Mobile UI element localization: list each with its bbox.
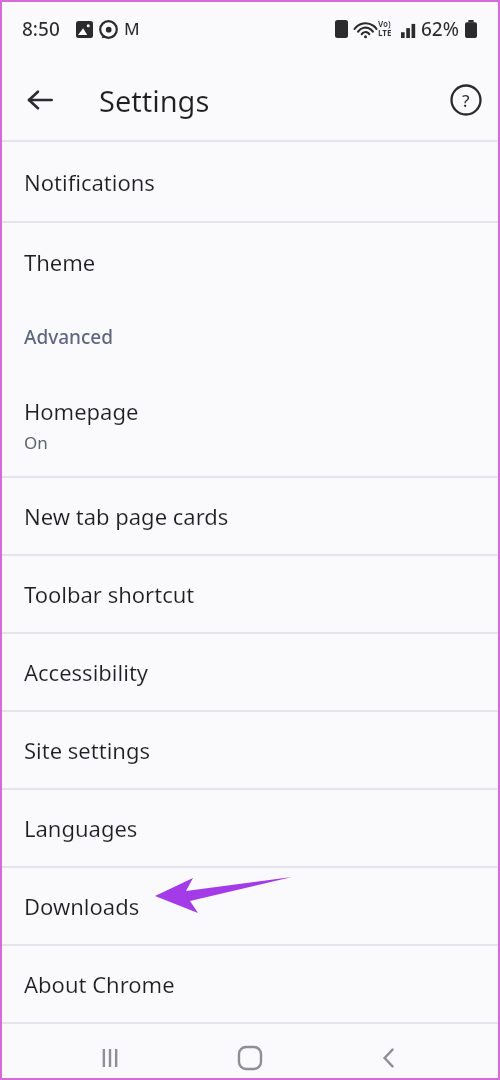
staticText: Settings (99, 81, 210, 120)
staticText: On (24, 431, 48, 454)
button[interactable]: Toolbar shortcut (0, 556, 500, 632)
button[interactable]: Notifications (0, 142, 500, 221)
staticText: Downloads (24, 891, 140, 921)
staticText: ? (462, 89, 470, 112)
staticText: Accessibility (24, 657, 149, 687)
button[interactable]: Site settings (0, 712, 500, 788)
staticText: About Chrome (24, 969, 175, 999)
button[interactable]: Back (12, 72, 68, 128)
button[interactable]: New tab page cards (0, 478, 500, 554)
button[interactable]: Homepage (0, 373, 500, 476)
staticText: M (124, 17, 140, 40)
button[interactable]: Help (438, 72, 494, 128)
staticText: Notifications (24, 167, 155, 197)
staticText: Languages (24, 813, 138, 843)
button[interactable]: Back (356, 1030, 422, 1080)
button[interactable]: Languages (0, 790, 500, 866)
staticText: Advanced (24, 324, 114, 350)
staticText: New tab page cards (24, 501, 229, 531)
button[interactable]: Accessibility (0, 634, 500, 710)
button[interactable]: About Chrome (0, 946, 500, 1022)
staticText: Site settings (24, 735, 150, 765)
staticText: Vo) (378, 18, 391, 29)
button[interactable]: Recents (77, 1030, 143, 1080)
staticText: Theme (24, 247, 96, 277)
button[interactable]: Home (217, 1030, 283, 1080)
button[interactable]: Theme (0, 223, 500, 301)
staticText: Homepage (24, 396, 139, 426)
staticText: 62% (421, 16, 459, 42)
staticText: LTE (378, 27, 392, 38)
staticText: 8:50 (22, 16, 60, 42)
staticText: Toolbar shortcut (24, 579, 195, 609)
button[interactable]: Downloads (0, 868, 500, 944)
